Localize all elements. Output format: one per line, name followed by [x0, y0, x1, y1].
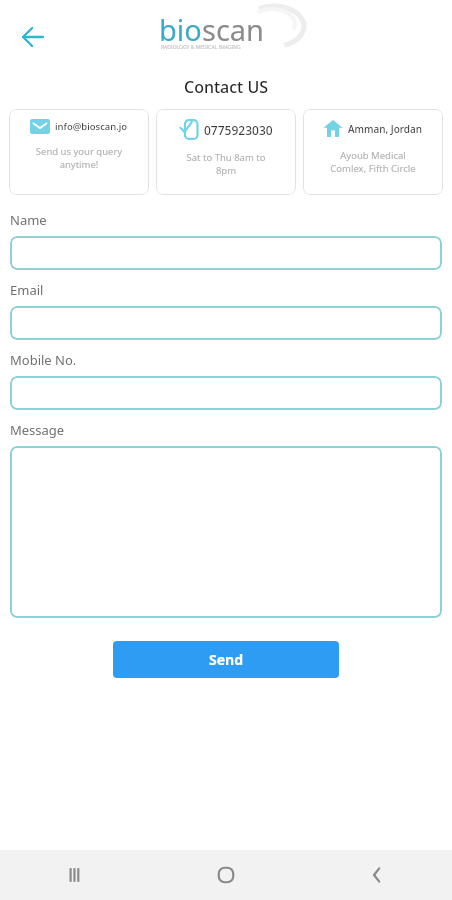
- staticText: Name: [10, 211, 47, 229]
- staticText: Send: [209, 650, 244, 669]
- staticText: bio: [159, 10, 202, 49]
- button[interactable]: Recent apps: [0, 850, 150, 900]
- button[interactable]: [10, 236, 442, 270]
- button[interactable]: info@bioscan.jo: [9, 109, 149, 195]
- staticText: Sat to Thu 8am to 8pm: [160, 151, 292, 177]
- staticText: Mobile No.: [10, 351, 77, 369]
- staticText: Email: [10, 281, 44, 299]
- button[interactable]: 0775923030: [156, 109, 296, 195]
- button[interactable]: [10, 446, 442, 618]
- staticText: Contact US: [184, 76, 269, 98]
- button[interactable]: [10, 306, 442, 340]
- staticText: Amman, Jordan: [348, 122, 423, 136]
- staticText: info@bioscan.jo: [55, 120, 128, 133]
- button[interactable]: Amman, Jordan: [303, 109, 443, 195]
- button[interactable]: [10, 376, 442, 410]
- button[interactable]: Send: [113, 641, 339, 678]
- staticText: 0775923030: [204, 122, 273, 138]
- staticText: RADIOLOGY & MEDICAL IMAGING: [161, 44, 241, 51]
- staticText: Message: [10, 421, 65, 439]
- button[interactable]: Home: [150, 850, 301, 900]
- staticText: Send us your query anytime!: [13, 145, 145, 171]
- button[interactable]: Back: [14, 18, 52, 56]
- button[interactable]: Back: [301, 850, 452, 900]
- staticText: scan: [202, 10, 265, 49]
- staticText: Ayoub Medical Comlex, Fifth Circle: [307, 149, 439, 175]
